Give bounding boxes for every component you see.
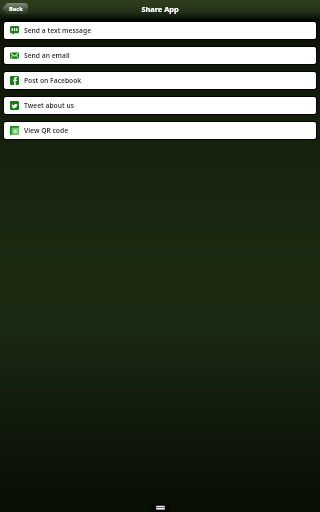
button[interactable]: Menu bbox=[151, 504, 170, 512]
staticText: Send an email bbox=[24, 51, 70, 60]
button[interactable]: Back bbox=[2, 3, 28, 14]
staticText: Share App bbox=[141, 4, 179, 14]
button[interactable]: Send a text message bbox=[4, 22, 316, 39]
button[interactable]: View QR code bbox=[4, 122, 316, 139]
staticText: Send a text message bbox=[24, 26, 92, 35]
staticText: View QR code bbox=[24, 126, 69, 135]
button[interactable]: Post on Facebook bbox=[4, 72, 316, 89]
staticText: Tweet about us bbox=[24, 101, 75, 110]
staticText: Back bbox=[9, 5, 23, 13]
button[interactable]: Send an email bbox=[4, 47, 316, 64]
staticText: Post on Facebook bbox=[24, 76, 82, 85]
button[interactable]: Tweet about us bbox=[4, 97, 316, 114]
